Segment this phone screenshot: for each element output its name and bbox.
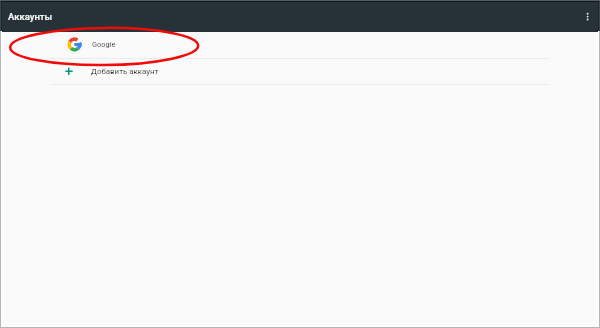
button[interactable]: More options <box>580 8 596 24</box>
staticText: Google <box>92 40 116 49</box>
button[interactable]: Google <box>0 32 600 58</box>
button[interactable]: Добавить аккаунт <box>0 59 600 84</box>
staticText: Добавить аккаунт <box>91 67 159 76</box>
staticText: Аккаунты <box>8 11 53 22</box>
